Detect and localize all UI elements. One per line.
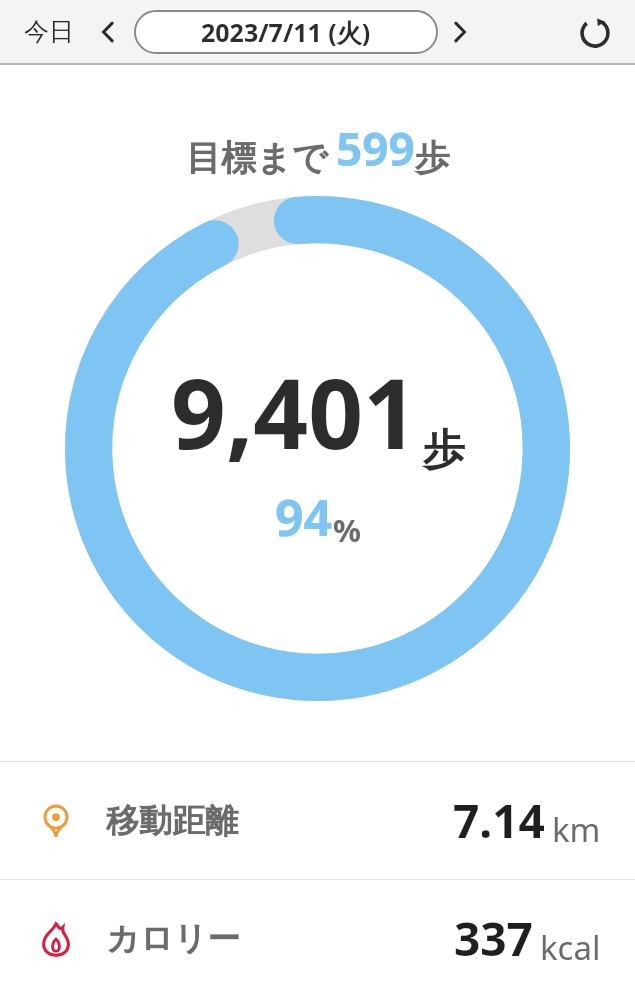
staticText: 7.14 — [453, 789, 545, 852]
button[interactable]: 2023/7/11 (火) — [134, 10, 438, 54]
staticText: 94 — [275, 483, 333, 551]
button[interactable]: 今日 — [0, 4, 88, 59]
staticText: km — [552, 807, 601, 852]
button[interactable]: 移動距離 — [0, 762, 635, 879]
staticText: 移動距離 — [106, 800, 238, 842]
staticText: 9,401 — [171, 346, 419, 477]
button[interactable]: 翌日 — [438, 10, 482, 54]
staticText: 歩 — [423, 424, 465, 477]
staticText: カロリー — [106, 918, 241, 960]
staticText: 599 — [336, 117, 415, 180]
staticText: kcal — [540, 925, 601, 970]
staticText: 歩 — [415, 136, 450, 180]
button[interactable]: カロリー — [0, 880, 635, 997]
button[interactable]: 前日 — [88, 10, 128, 54]
staticText: 2023/7/11 (火) — [201, 15, 371, 49]
staticText: % — [333, 509, 361, 551]
staticText: 今日 — [24, 16, 74, 47]
staticText: 目標まで — [186, 136, 328, 180]
staticText: 337 — [454, 907, 533, 970]
button[interactable]: 更新 — [567, 4, 623, 60]
